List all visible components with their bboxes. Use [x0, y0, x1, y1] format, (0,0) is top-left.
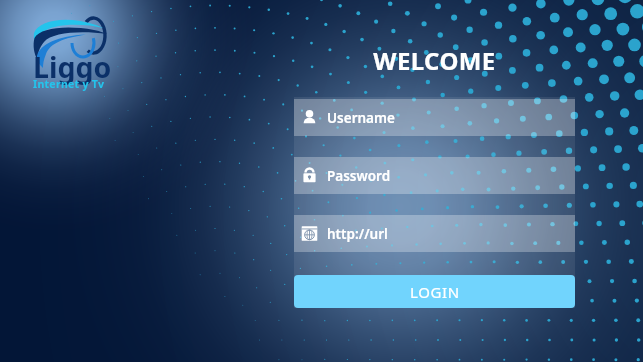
button[interactable]: Username — [294, 99, 575, 136]
staticText: http://url — [327, 225, 388, 243]
staticText: Username — [327, 109, 395, 127]
staticText: Liggo — [33, 48, 112, 87]
staticText: WELCOME — [294, 44, 575, 77]
staticText: LOGIN — [410, 282, 460, 302]
staticText: Password — [327, 167, 391, 185]
button[interactable]: LOGIN — [294, 275, 575, 308]
staticText: Internet y Tv — [33, 77, 105, 91]
button[interactable]: Password — [294, 157, 575, 194]
button[interactable]: http://url — [294, 215, 575, 252]
